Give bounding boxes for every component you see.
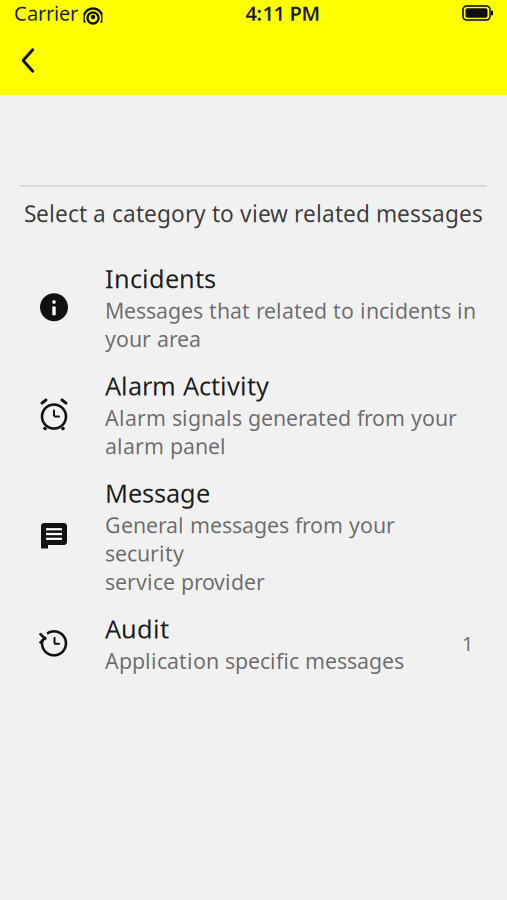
staticText: 4:11 PM — [245, 0, 320, 26]
staticText: Alarm Activity — [105, 369, 269, 402]
staticText: General messages from your security serv… — [105, 511, 395, 596]
button[interactable]: Back — [0, 32, 56, 88]
button[interactable]: Message — [0, 468, 507, 604]
staticText: Carrier — [14, 0, 78, 26]
button[interactable]: Incidents — [0, 254, 507, 361]
staticText: Alarm signals generated from your alarm … — [105, 403, 457, 460]
staticText: Select a category to view related messag… — [24, 198, 483, 229]
button[interactable]: Audit — [0, 604, 507, 683]
staticText: 1 — [462, 630, 473, 657]
staticText: Messages that related to incidents in yo… — [105, 296, 476, 353]
button[interactable]: Alarm Activity — [0, 361, 507, 468]
staticText: Incidents — [105, 262, 216, 295]
staticText: Message — [105, 476, 210, 510]
staticText: Application specific messages — [105, 646, 404, 675]
staticText: Audit — [105, 612, 169, 645]
